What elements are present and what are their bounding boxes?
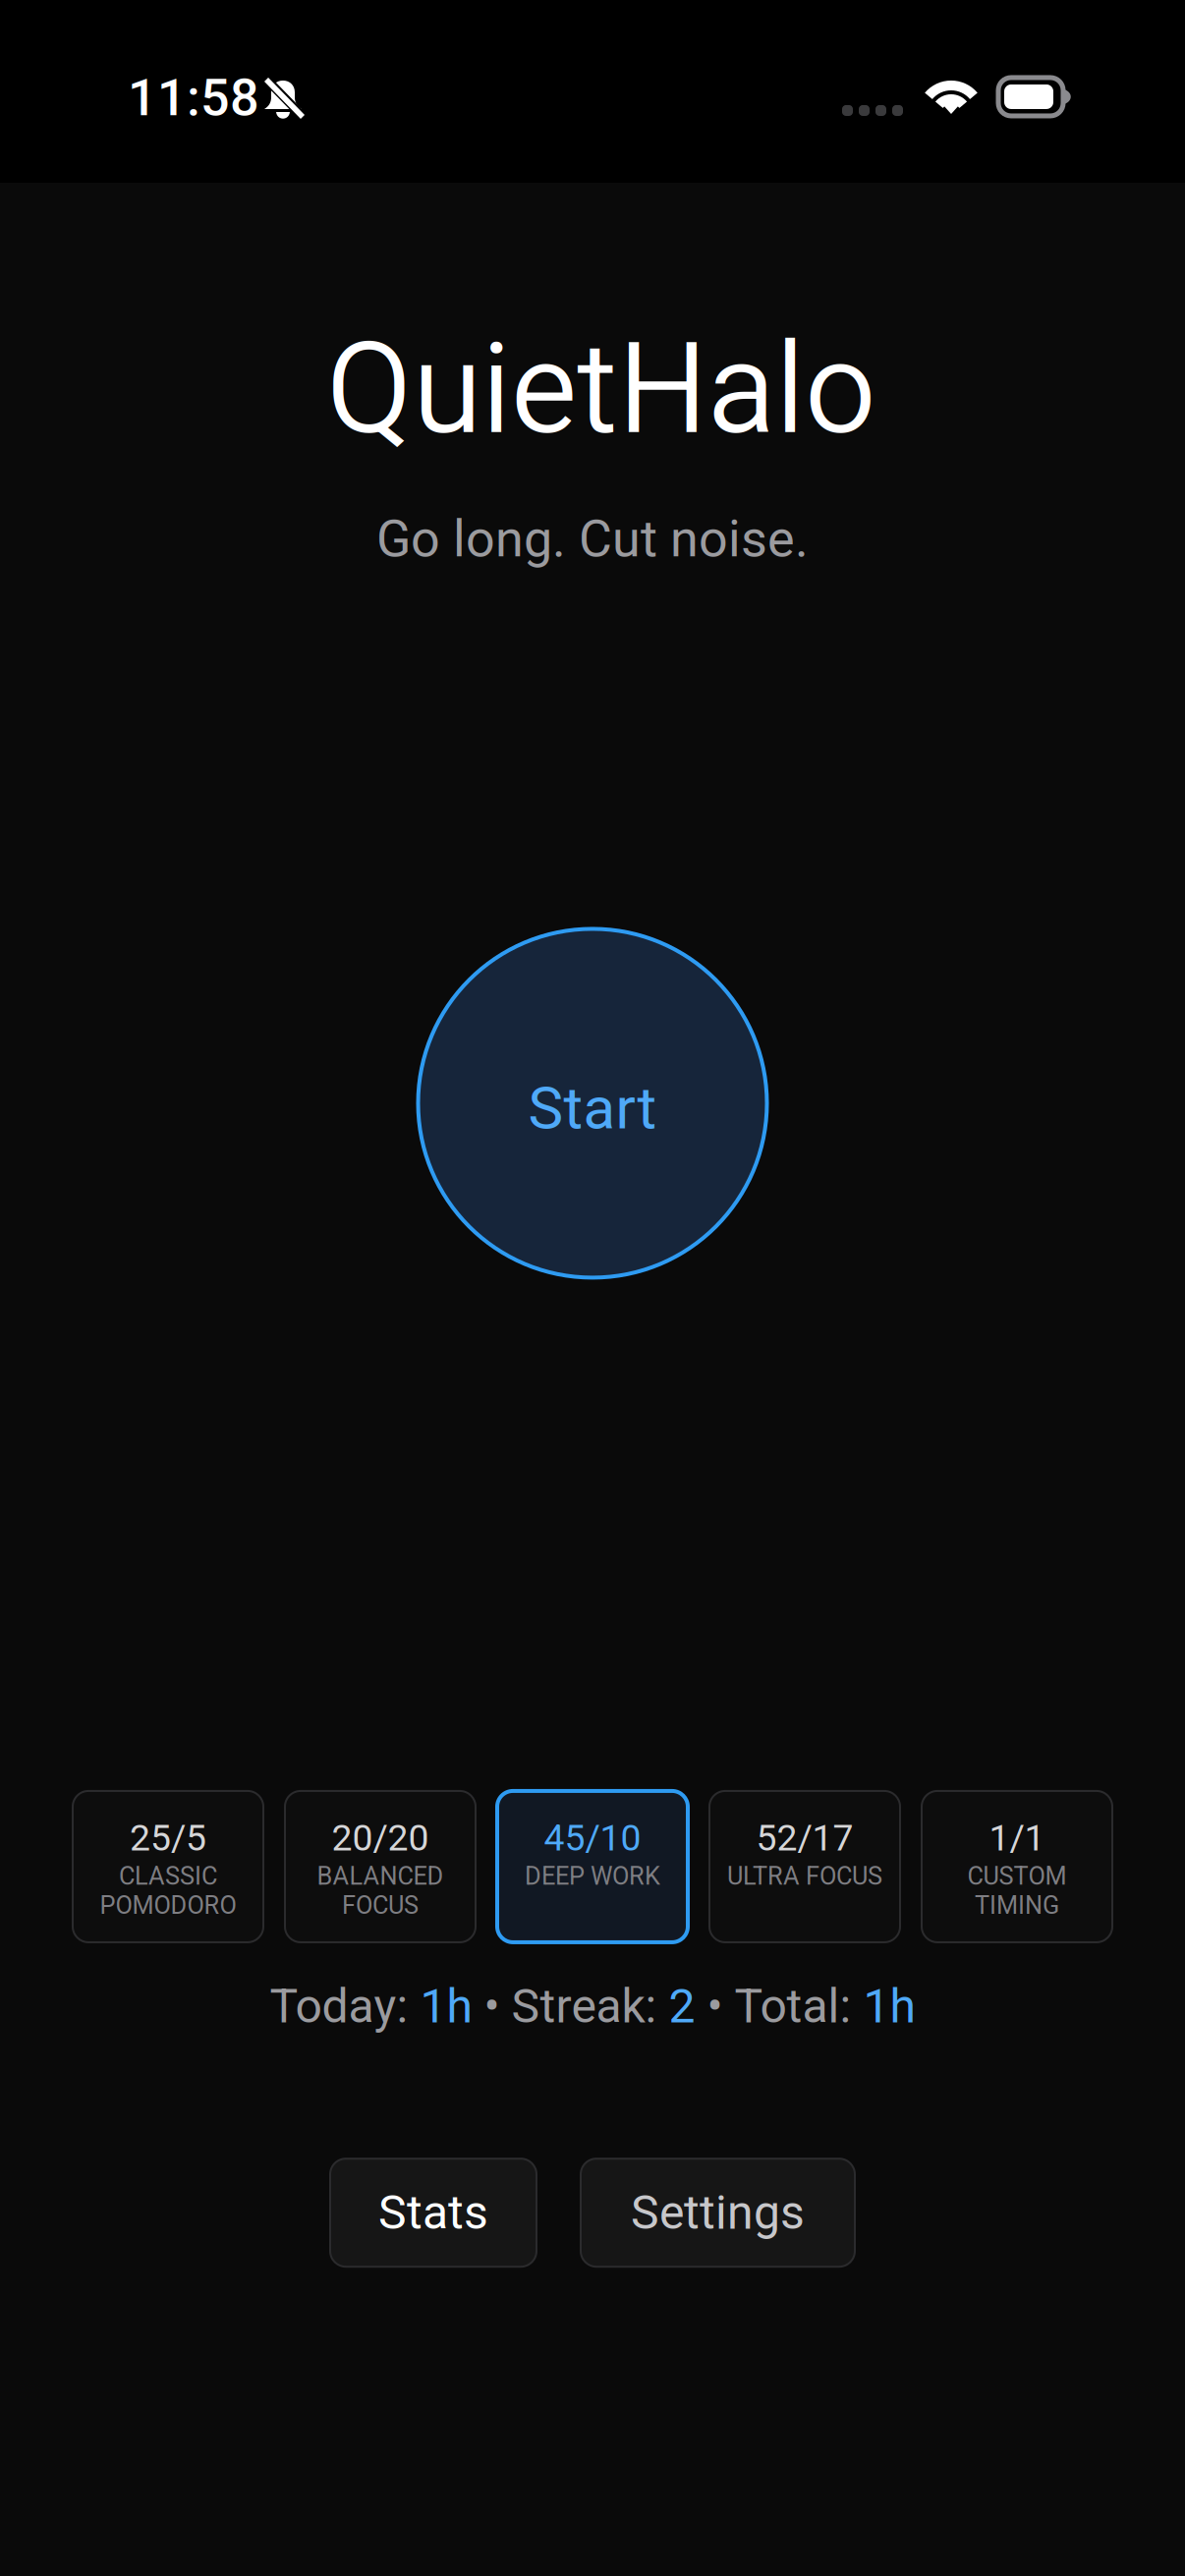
staticText: 2 [669,1979,695,2034]
staticText: 25/5 [130,1816,206,1859]
staticText: DEEP WORK [525,1861,660,1891]
staticText: 20/20 [332,1816,429,1859]
staticText: CLASSIC [119,1861,217,1891]
staticText: ULTRA FOCUS [727,1861,882,1891]
button[interactable]: Stats [330,2159,536,2267]
staticText: TIMING [975,1891,1059,1920]
staticText: Go long. Cut noise. [376,509,809,569]
button[interactable]: Settings [581,2159,855,2267]
staticText: Today: [270,1979,420,2034]
staticText: 1h [863,1979,915,2034]
staticText: POMODORO [100,1891,236,1920]
button[interactable]: 45/10 [497,1791,688,1942]
staticText: 1/1 [989,1816,1045,1859]
staticText: BALANCED [317,1861,444,1891]
staticText: QuietHalo [326,315,876,463]
staticText: • [695,1979,734,2034]
staticText: 1h [420,1979,472,2034]
staticText: Streak: [511,1979,669,2034]
staticText: FOCUS [342,1891,419,1920]
staticText: CUSTOM [967,1861,1067,1891]
staticText: 45/10 [544,1816,641,1859]
staticText: • [472,1979,511,2034]
button[interactable]: 1/1 [922,1791,1112,1942]
button[interactable]: 20/20 [285,1791,476,1942]
button[interactable]: 25/5 [73,1791,263,1942]
staticText: Stats [378,2185,488,2240]
staticText: Settings [631,2185,805,2240]
staticText: 11:58 [128,68,259,128]
staticText: 52/17 [756,1816,853,1859]
button[interactable]: 52/17 [709,1791,900,1942]
button[interactable]: Start [416,926,769,1280]
staticText: Total: [734,1979,863,2034]
staticText: Start [528,1074,657,1143]
